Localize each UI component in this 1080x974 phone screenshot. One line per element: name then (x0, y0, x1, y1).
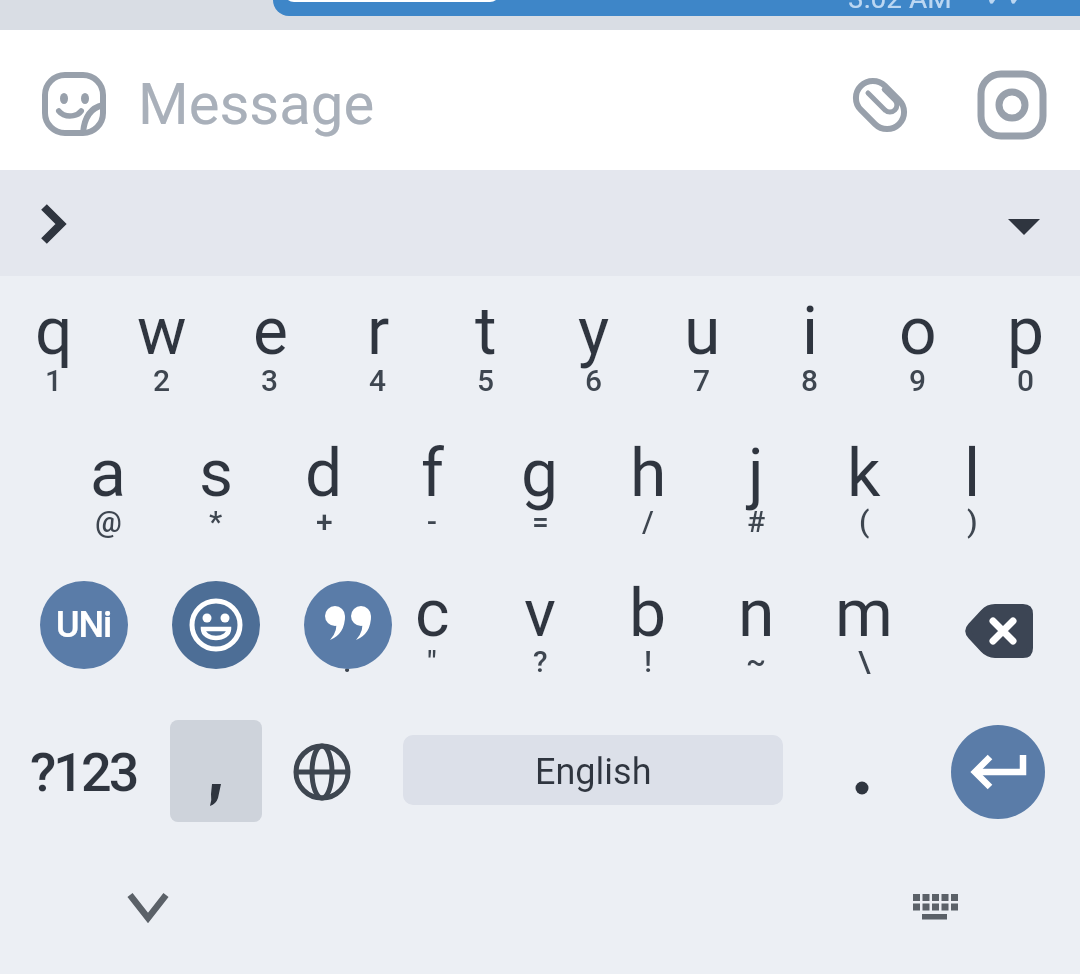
button[interactable]: f (378, 428, 486, 518)
button[interactable]: 2 (108, 335, 216, 425)
button[interactable] (126, 888, 170, 924)
staticText: . (343, 644, 352, 679)
button[interactable]: * (162, 476, 270, 566)
staticText: 6 (585, 363, 603, 398)
button[interactable]: v (486, 568, 594, 658)
button[interactable]: ~ (702, 616, 810, 706)
button[interactable] (170, 720, 262, 822)
button[interactable]: 4 (324, 335, 432, 425)
staticText: = (532, 504, 549, 539)
button[interactable]: h (594, 428, 702, 518)
button[interactable] (172, 581, 260, 669)
button[interactable]: u (648, 286, 756, 376)
button[interactable]: 6 (540, 335, 648, 425)
button[interactable] (978, 71, 1046, 139)
button[interactable]: @ (54, 476, 162, 566)
staticText: @ (95, 504, 122, 539)
button[interactable]: m (810, 568, 918, 658)
button[interactable]: ?123 (20, 727, 146, 817)
button[interactable]: 3 (216, 335, 324, 425)
button[interactable]: n (702, 568, 810, 658)
button[interactable]: UNi (40, 581, 128, 669)
button[interactable]: s (162, 428, 270, 518)
staticText: ✓✓ (985, 0, 1029, 12)
button[interactable]: j (702, 428, 810, 518)
button[interactable] (32, 203, 74, 245)
staticText: y (578, 293, 610, 370)
staticText: g (521, 435, 559, 512)
staticText: + (316, 504, 333, 539)
button[interactable] (846, 71, 914, 139)
button[interactable]: \ (810, 616, 918, 706)
button[interactable]: k (810, 428, 918, 518)
button[interactable]: w (108, 286, 216, 376)
staticText: English (535, 751, 652, 793)
button[interactable]: a (54, 428, 162, 518)
staticText: UNi (56, 604, 112, 646)
button[interactable]: b (594, 568, 702, 658)
staticText: 7 (693, 363, 711, 398)
staticText: \ (858, 644, 871, 679)
button[interactable]: # (702, 476, 810, 566)
button[interactable]: t (432, 286, 540, 376)
staticText: Message (138, 70, 375, 138)
button[interactable]: ? (486, 616, 594, 706)
staticText: u (684, 293, 721, 370)
staticText: * (209, 504, 223, 539)
staticText: k (847, 435, 881, 512)
button[interactable]: i (756, 286, 864, 376)
staticText: h (630, 435, 667, 512)
button[interactable]: ! (594, 616, 702, 706)
staticText: 4 (369, 363, 387, 398)
button[interactable]: o (864, 286, 972, 376)
button[interactable] (911, 893, 959, 927)
button[interactable]: + (270, 476, 378, 566)
button[interactable]: p (972, 286, 1080, 376)
staticText: ) (967, 504, 978, 539)
staticText: v (524, 575, 556, 652)
button[interactable]: 8 (756, 335, 864, 425)
button[interactable]: d (270, 428, 378, 518)
button[interactable]: l (918, 428, 1026, 518)
button[interactable]: c (378, 568, 486, 658)
button[interactable] (292, 742, 352, 802)
button[interactable] (1000, 210, 1048, 236)
button[interactable] (960, 601, 1040, 661)
button[interactable] (820, 727, 904, 817)
button[interactable]: e (216, 286, 324, 376)
button[interactable]: 7 (648, 335, 756, 425)
staticText: a (90, 435, 126, 512)
staticText: o (899, 293, 937, 370)
staticText: l (964, 435, 981, 512)
staticText: " (427, 644, 437, 679)
staticText: 3 (261, 363, 279, 398)
button[interactable] (42, 72, 106, 136)
button[interactable] (304, 581, 392, 669)
staticText: ( (859, 504, 870, 539)
staticText: 2 (153, 363, 171, 398)
staticText: b (629, 575, 667, 652)
button[interactable]: q (0, 286, 108, 376)
button[interactable]: r (324, 286, 432, 376)
staticText: 3:02 AM (848, 0, 952, 12)
staticText: s (199, 435, 234, 512)
button[interactable] (951, 725, 1045, 819)
button[interactable]: - (378, 476, 486, 566)
button[interactable]: 0 (972, 335, 1080, 425)
button[interactable]: y (540, 286, 648, 376)
staticText: ? (533, 644, 548, 679)
button[interactable]: 1 (0, 335, 108, 425)
button[interactable]: . (293, 616, 401, 706)
button[interactable]: ) (918, 476, 1026, 566)
button[interactable]: = (486, 476, 594, 566)
button[interactable]: English (403, 735, 783, 805)
button[interactable]: 5 (432, 335, 540, 425)
staticText: p (1007, 293, 1045, 370)
button[interactable]: Message (138, 30, 538, 170)
button[interactable]: 9 (864, 335, 972, 425)
button[interactable]: ( (810, 476, 918, 566)
button[interactable]: / (594, 476, 702, 566)
button[interactable]: g (486, 428, 594, 518)
button[interactable]: " (378, 616, 486, 706)
staticText: n (738, 575, 775, 652)
